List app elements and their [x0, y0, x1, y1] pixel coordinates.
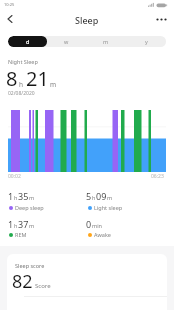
button[interactable] [153, 13, 171, 25]
staticText: 82 [12, 269, 33, 294]
staticText: 35 [18, 190, 29, 202]
staticText: 21 [26, 65, 49, 92]
button[interactable]: m [86, 36, 126, 47]
staticText: 8 [6, 65, 18, 92]
staticText: Light sleep [94, 204, 123, 211]
button[interactable]: y [126, 36, 166, 47]
button[interactable] [3, 13, 17, 25]
staticText: 02/08/2020 [8, 90, 35, 97]
staticText: Sleep score [15, 262, 45, 269]
staticText: h [19, 80, 24, 89]
button[interactable]: REM [9, 231, 27, 238]
button[interactable]: Deep sleep [9, 204, 44, 211]
staticText: REM [15, 231, 27, 238]
button[interactable]: w [47, 36, 86, 47]
staticText: 0 [86, 218, 92, 230]
staticText: m [107, 194, 113, 201]
staticText: 00:02 [8, 173, 21, 180]
staticText: m [29, 222, 35, 229]
staticText: Score [35, 282, 51, 290]
staticText: Deep sleep [15, 204, 44, 211]
staticText: 09 [96, 190, 107, 202]
staticText: m [103, 38, 109, 45]
button[interactable]: Awake [88, 231, 111, 238]
staticText: 1 [8, 190, 14, 202]
staticText: m [29, 194, 35, 201]
button[interactable]: d [8, 36, 47, 47]
staticText: h [92, 194, 96, 201]
staticText: 5 [86, 190, 92, 202]
staticText: Night Sleep [8, 58, 38, 65]
staticText: 37 [18, 218, 29, 230]
button[interactable] [8, 105, 166, 172]
staticText: y [145, 38, 148, 45]
staticText: 06:23 [151, 173, 164, 180]
staticText: Awake [94, 231, 111, 238]
staticText: m [50, 80, 57, 89]
staticText: 1 [8, 218, 14, 230]
staticText: d [26, 38, 30, 45]
staticText: min [92, 222, 102, 229]
staticText: w [64, 38, 69, 45]
button[interactable]: Sleep score [7, 254, 167, 310]
staticText: 10:25 [4, 2, 15, 7]
staticText: h [14, 194, 18, 201]
button[interactable]: Light sleep [88, 204, 123, 211]
staticText: Sleep [75, 14, 99, 26]
staticText: h [14, 222, 18, 229]
